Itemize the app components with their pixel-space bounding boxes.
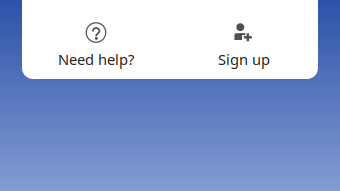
button[interactable]: Need help?: [22, 12, 170, 79]
button[interactable]: Sign up: [170, 12, 318, 79]
staticText: Sign up: [218, 49, 270, 69]
staticText: Need help?: [58, 49, 134, 69]
